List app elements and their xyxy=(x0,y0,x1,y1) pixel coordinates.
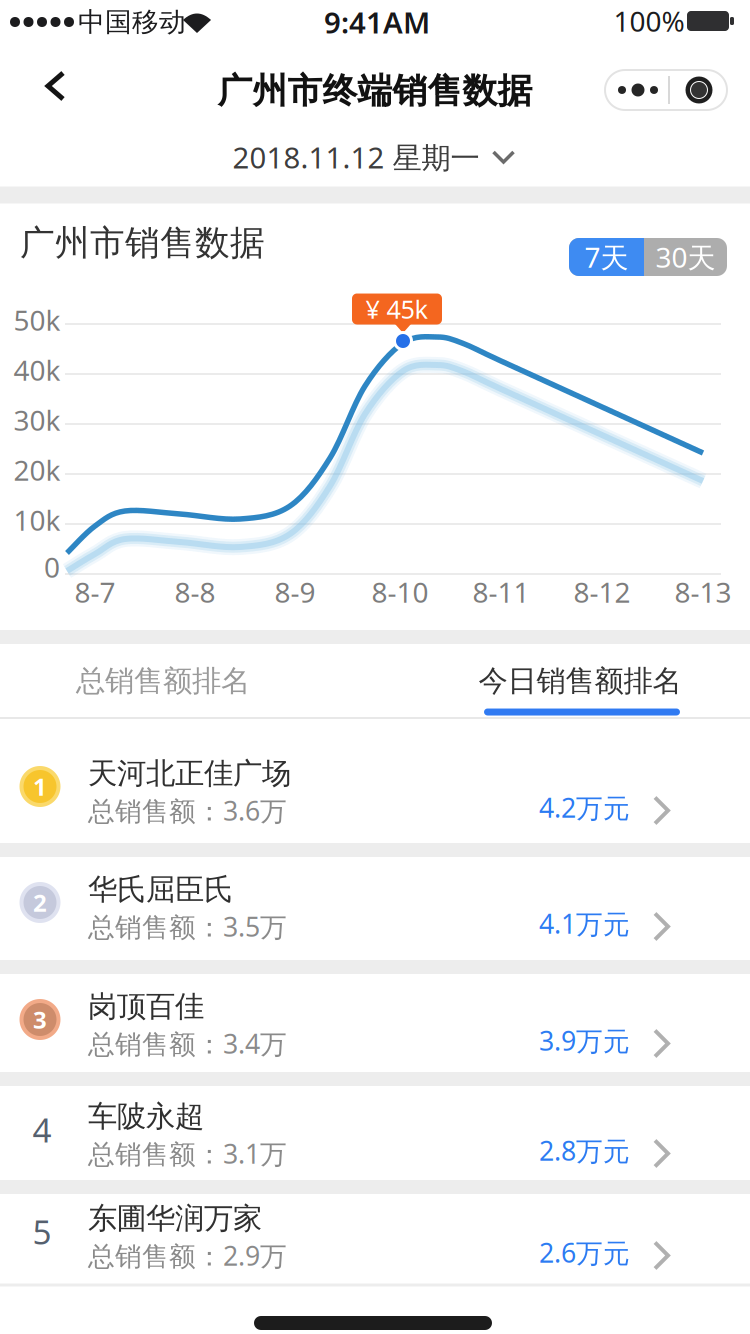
staticText: 3 xyxy=(33,1004,47,1035)
staticText: 岗顶百佳 xyxy=(88,988,204,1024)
button[interactable]: 30天 xyxy=(644,238,727,276)
staticText: 天河北正佳广场 xyxy=(88,755,291,791)
staticText: 总销售额排名 xyxy=(76,663,250,699)
staticText: 今日销售额排名 xyxy=(478,663,681,699)
button[interactable]: 3 xyxy=(0,966,750,1083)
button[interactable]: 5 xyxy=(0,1178,750,1295)
staticText: 3.9万元 xyxy=(539,1023,630,1058)
staticText: 广州市销售数据 xyxy=(20,222,265,264)
staticText: 4.1万元 xyxy=(539,906,630,941)
staticText: 中国移动 xyxy=(78,6,186,38)
staticText: 30天 xyxy=(655,238,715,276)
staticText: 8-9 xyxy=(274,573,315,611)
staticText: 2.8万元 xyxy=(539,1133,630,1168)
staticText: 东圃华润万家 xyxy=(88,1200,262,1236)
staticText: 20k xyxy=(13,451,60,489)
staticText: 总销售额：3.5万 xyxy=(88,909,287,944)
button[interactable]: 1 xyxy=(0,733,750,850)
staticText: 8-8 xyxy=(174,573,215,611)
staticText: 0 xyxy=(44,548,60,586)
staticText: 8-10 xyxy=(371,573,428,611)
button[interactable]: 2 xyxy=(0,849,750,966)
staticText: 40k xyxy=(13,351,60,389)
staticText: 8-7 xyxy=(74,573,115,611)
staticText: 广州市终端销售数据 xyxy=(217,70,532,112)
staticText: 50k xyxy=(13,301,60,339)
staticText: 4.2万元 xyxy=(539,790,630,825)
button[interactable]: More xyxy=(605,69,667,111)
staticText: 车陂永超 xyxy=(88,1098,204,1134)
staticText: 2018.11.12 星期一 xyxy=(232,137,479,176)
button[interactable]: 总销售额排名 xyxy=(0,644,328,718)
staticText: 8-13 xyxy=(674,573,731,611)
staticText: 9:41AM xyxy=(324,2,430,41)
staticText: 8-11 xyxy=(472,573,529,611)
staticText: 5 xyxy=(32,1209,51,1254)
staticText: 100% xyxy=(613,2,684,40)
staticText: 7天 xyxy=(584,238,628,276)
staticText: ¥ 45k xyxy=(365,292,428,326)
staticText: 30k xyxy=(13,401,60,439)
button[interactable]: 4 xyxy=(0,1076,750,1193)
staticText: 2 xyxy=(33,887,47,918)
staticText: 总销售额：3.4万 xyxy=(88,1026,287,1061)
button[interactable]: 今日销售额排名 xyxy=(415,644,745,718)
button[interactable]: Close xyxy=(668,69,730,111)
staticText: 总销售额：3.1万 xyxy=(88,1136,287,1171)
button[interactable]: Change date xyxy=(232,137,515,176)
staticText: 华氏屈臣氏 xyxy=(88,871,233,907)
staticText: 4 xyxy=(32,1107,51,1152)
staticText: 10k xyxy=(13,501,60,539)
staticText: 2.6万元 xyxy=(539,1235,630,1270)
staticText: 8-12 xyxy=(573,573,630,611)
button[interactable]: Back xyxy=(42,70,98,114)
button[interactable]: 7天 xyxy=(569,238,644,276)
staticText: 总销售额：3.6万 xyxy=(88,793,287,828)
staticText: 总销售额：2.9万 xyxy=(88,1238,287,1273)
staticText: 1 xyxy=(33,771,47,802)
